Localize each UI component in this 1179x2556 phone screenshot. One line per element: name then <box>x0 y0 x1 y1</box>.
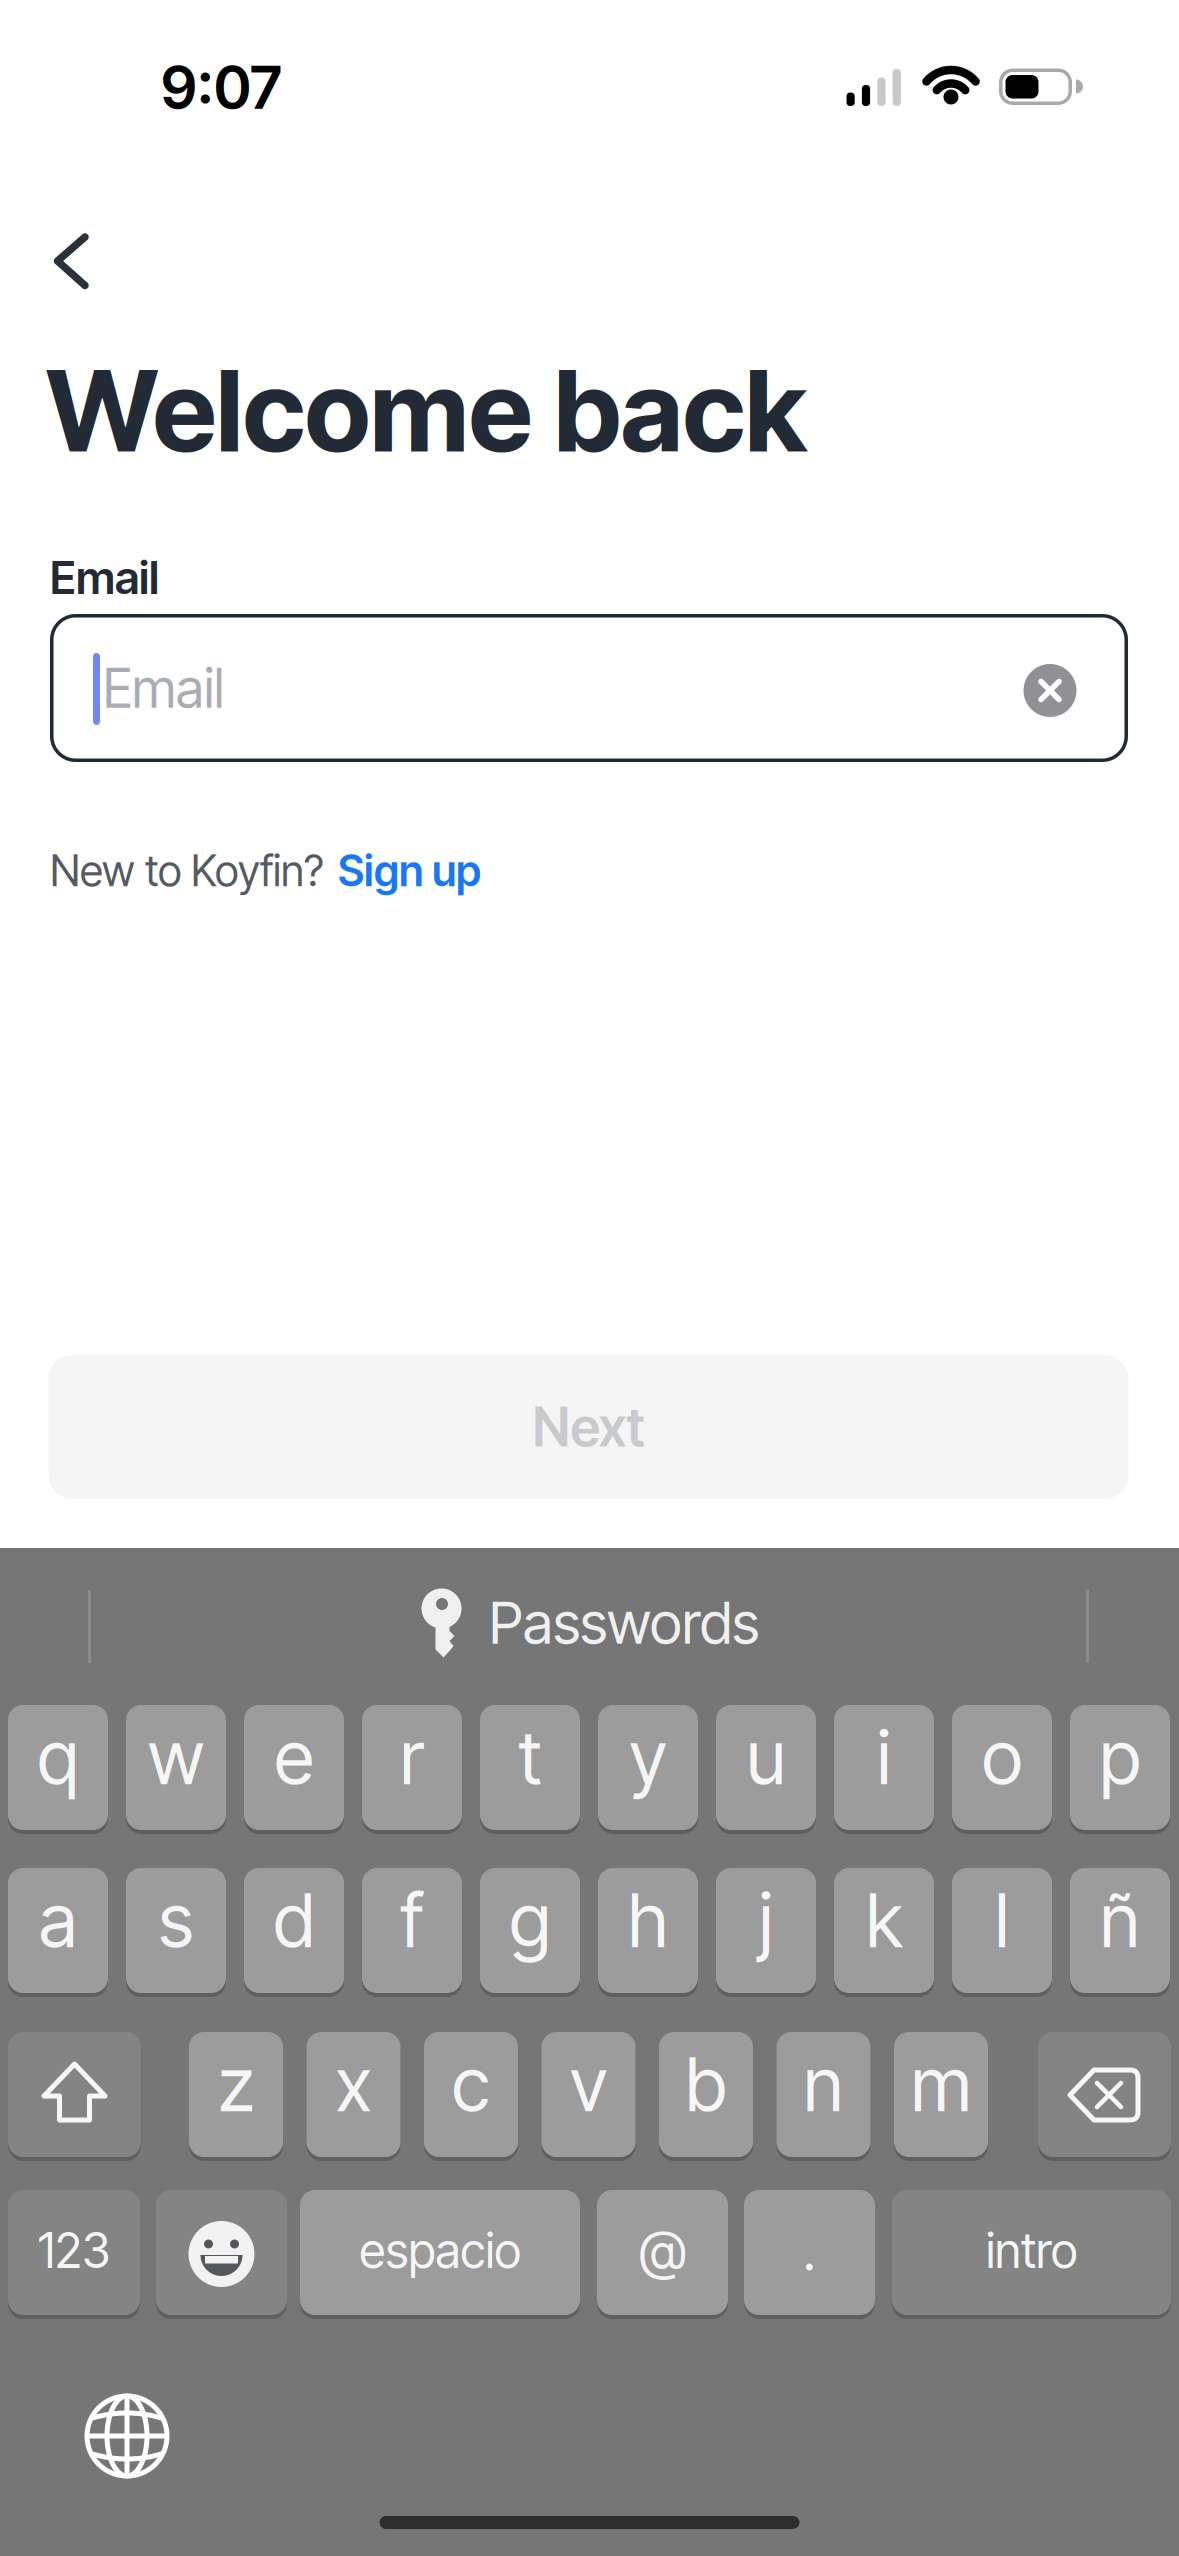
staticText: g <box>509 1876 550 1965</box>
staticText: . <box>803 2218 816 2283</box>
button[interactable]: o <box>952 1705 1052 1830</box>
button[interactable]: Email <box>50 614 1128 762</box>
staticText: h <box>628 1876 668 1965</box>
button[interactable] <box>1038 2032 1171 2157</box>
button[interactable]: s <box>126 1868 226 1993</box>
staticText: q <box>37 1713 78 1802</box>
staticText: o <box>982 1713 1022 1802</box>
staticText: k <box>866 1876 902 1965</box>
button[interactable]: j <box>716 1868 816 1993</box>
staticText: intro <box>986 2221 1077 2280</box>
button[interactable] <box>48 230 110 292</box>
button[interactable]: m <box>894 2032 988 2157</box>
button[interactable] <box>77 2386 177 2486</box>
staticText: v <box>570 2040 607 2129</box>
staticText: Passwords <box>489 1588 759 1658</box>
button[interactable]: ñ <box>1070 1868 1170 1993</box>
button[interactable]: z <box>189 2032 283 2157</box>
button[interactable]: l <box>952 1868 1052 1993</box>
staticText: l <box>995 1876 1009 1965</box>
button[interactable]: n <box>776 2032 870 2157</box>
staticText: New to Koyfin? <box>50 845 324 897</box>
button[interactable] <box>156 2190 287 2315</box>
staticText: b <box>685 2040 726 2129</box>
button[interactable]: e <box>244 1705 344 1830</box>
button[interactable]: a <box>8 1868 108 1993</box>
staticText: d <box>273 1876 314 1965</box>
staticText: Welcome back <box>46 343 806 478</box>
staticText: 123 <box>38 2221 110 2280</box>
button[interactable]: h <box>598 1868 698 1993</box>
button[interactable]: c <box>424 2032 518 2157</box>
staticText: ñ <box>1100 1876 1140 1965</box>
button[interactable]: 123 <box>8 2190 140 2315</box>
button[interactable]: y <box>598 1705 698 1830</box>
button[interactable]: @ <box>597 2190 728 2315</box>
staticText: e <box>274 1713 313 1802</box>
staticText: t <box>518 1713 541 1802</box>
button[interactable]: x <box>306 2032 400 2157</box>
button[interactable]: i <box>834 1705 934 1830</box>
button[interactable]: d <box>244 1868 344 1993</box>
staticText: p <box>1099 1713 1140 1802</box>
staticText: Email <box>50 550 159 605</box>
button[interactable]: b <box>659 2032 753 2157</box>
staticText: s <box>158 1876 193 1965</box>
button[interactable]: . <box>744 2190 875 2315</box>
staticText: m <box>911 2040 971 2129</box>
button[interactable]: w <box>126 1705 226 1830</box>
staticText: @ <box>639 2218 686 2283</box>
button[interactable]: p <box>1070 1705 1170 1830</box>
staticText: z <box>218 2040 254 2129</box>
staticText: r <box>400 1713 424 1802</box>
button[interactable]: r <box>362 1705 462 1830</box>
staticText: w <box>148 1713 204 1802</box>
staticText: i <box>877 1713 891 1802</box>
staticText: n <box>803 2040 843 2129</box>
staticText: a <box>39 1876 77 1965</box>
button[interactable]: q <box>8 1705 108 1830</box>
staticText: espacio <box>359 2221 520 2280</box>
button[interactable] <box>8 2032 141 2157</box>
button[interactable]: k <box>834 1868 934 1993</box>
staticText: x <box>335 2040 371 2129</box>
button[interactable]: g <box>480 1868 580 1993</box>
staticText: Next <box>532 1395 644 1459</box>
button[interactable]: Sign up <box>338 845 481 897</box>
button[interactable] <box>1023 664 1076 717</box>
button[interactable]: espacio <box>300 2190 580 2315</box>
button[interactable]: v <box>541 2032 635 2157</box>
staticText: u <box>746 1713 785 1802</box>
staticText: f <box>400 1876 423 1965</box>
button[interactable]: Passwords <box>239 1571 939 1675</box>
staticText: y <box>629 1713 666 1802</box>
staticText: j <box>759 1876 773 1965</box>
button[interactable]: t <box>480 1705 580 1830</box>
button[interactable]: u <box>716 1705 816 1830</box>
button[interactable]: Next <box>48 1355 1128 1499</box>
button[interactable]: f <box>362 1868 462 1993</box>
staticText: Sign up <box>338 845 481 897</box>
staticText: c <box>452 2040 490 2129</box>
staticText: Email <box>103 656 224 720</box>
button[interactable]: intro <box>892 2190 1171 2315</box>
staticText: 9:07 <box>161 52 282 123</box>
